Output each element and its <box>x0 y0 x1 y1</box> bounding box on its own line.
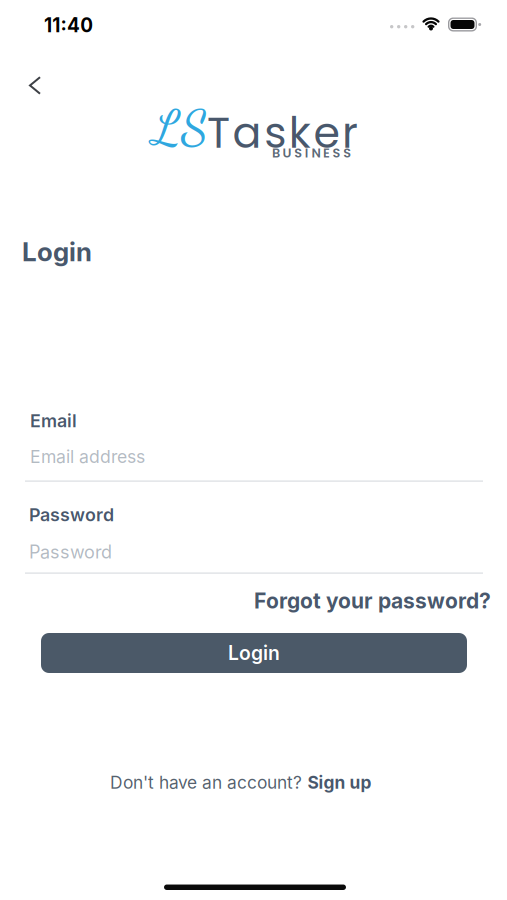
staticText: Login <box>22 236 92 267</box>
staticText: Don't have an account? <box>110 772 302 793</box>
staticText: a <box>233 103 262 163</box>
staticText: r <box>342 103 358 163</box>
staticText: Forgot your password? <box>254 588 491 613</box>
button[interactable]: Login <box>41 633 467 673</box>
staticText: s <box>264 103 286 163</box>
staticText: e <box>313 103 339 163</box>
staticText: Password <box>29 541 112 563</box>
staticText: Sign up <box>307 772 371 793</box>
staticText: 11:40 <box>44 14 93 37</box>
staticText: Email address <box>30 446 145 467</box>
staticText: k <box>289 103 311 163</box>
button[interactable]: Sign up <box>307 772 371 793</box>
staticText: Email <box>30 410 77 432</box>
staticText: T <box>207 103 230 163</box>
staticText: BUSINESS <box>272 144 351 162</box>
staticText: Password <box>29 504 114 526</box>
button[interactable] <box>22 69 48 102</box>
staticText: LS <box>152 98 208 157</box>
staticText: Login <box>228 641 280 665</box>
button[interactable]: Forgot your password? <box>254 588 491 613</box>
